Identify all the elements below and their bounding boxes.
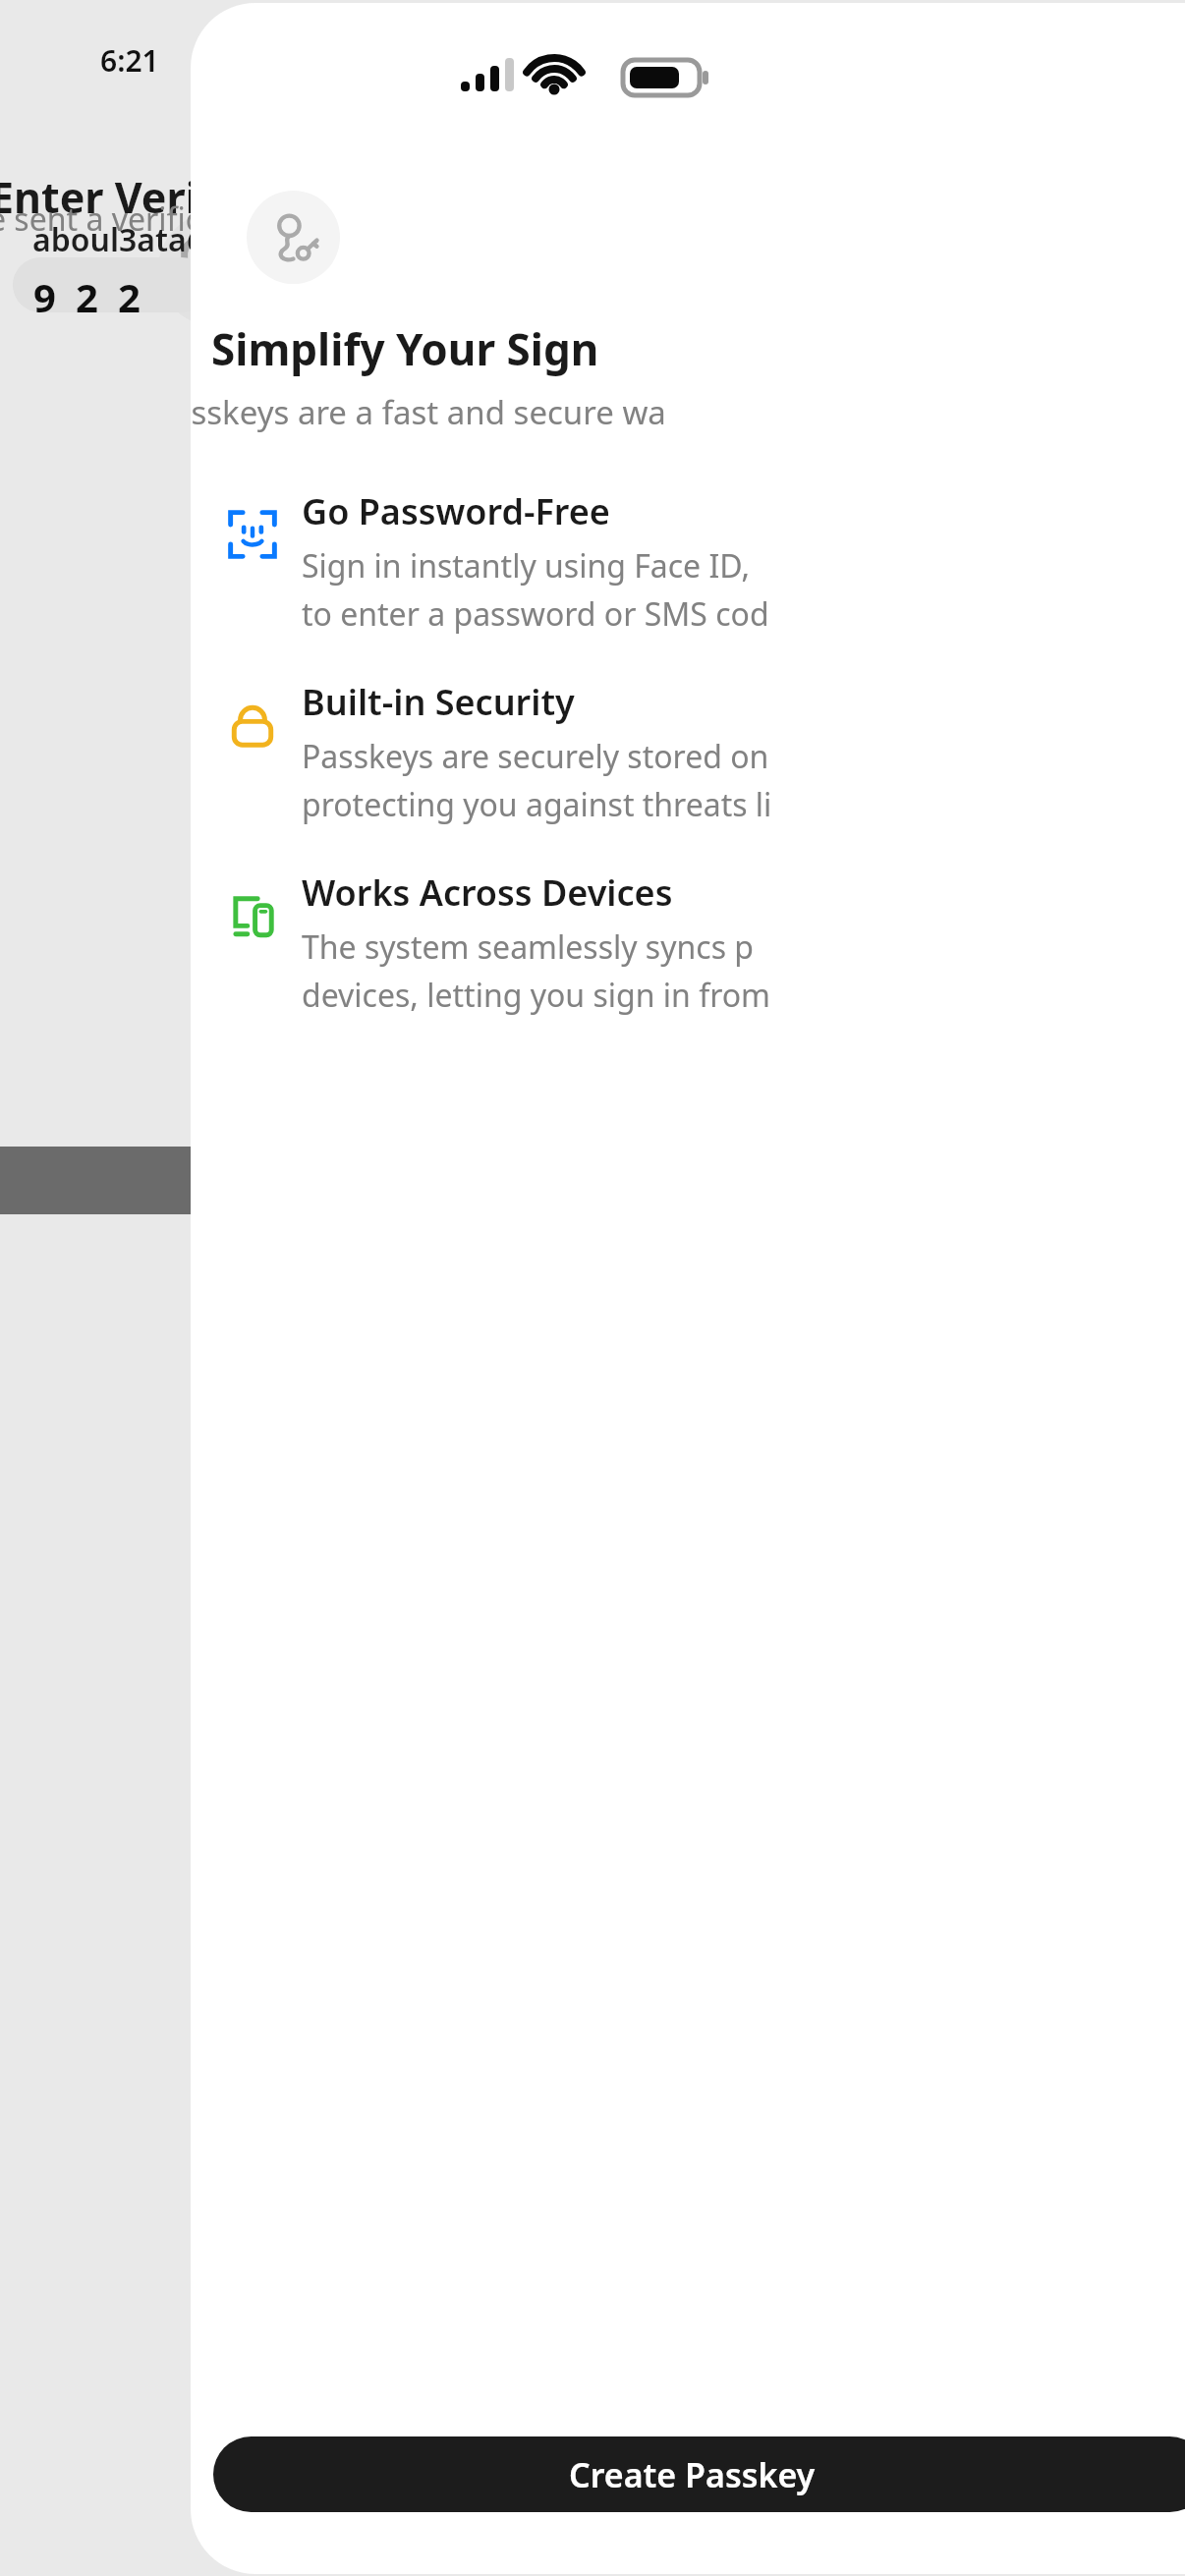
staticText: Go Password-Free: [302, 487, 610, 535]
button[interactable]: Create Passkey: [213, 2436, 1185, 2512]
staticText: Passkeys are securely stored on: [302, 735, 769, 778]
staticText: Simplify Your Sign: [211, 319, 599, 378]
staticText: Create Passkey: [569, 2452, 816, 2497]
staticText: Enter Verifica: [0, 168, 275, 226]
staticText: 2: [118, 270, 141, 323]
staticText: The system seamlessly syncs p: [302, 925, 754, 969]
staticText: Built-in Security: [302, 678, 575, 726]
staticText: e sent a verification: [0, 197, 276, 241]
staticText: to enter a password or SMS cod: [302, 592, 769, 636]
staticText: Passkeys are a fast and secure wa: [191, 390, 666, 434]
button[interactable]: Next: [0, 1147, 1185, 1214]
staticText: protecting you against threats li: [302, 783, 772, 826]
staticText: aboul3ata@g: [32, 218, 235, 261]
staticText: Works Across Devices: [302, 868, 673, 917]
staticText: 6:21: [100, 40, 159, 81]
staticText: devices, letting you sign in from: [302, 974, 771, 1017]
staticText: Sign in instantly using Face ID,: [302, 544, 759, 588]
staticText: 9: [33, 270, 56, 323]
staticText: 2: [76, 270, 98, 323]
